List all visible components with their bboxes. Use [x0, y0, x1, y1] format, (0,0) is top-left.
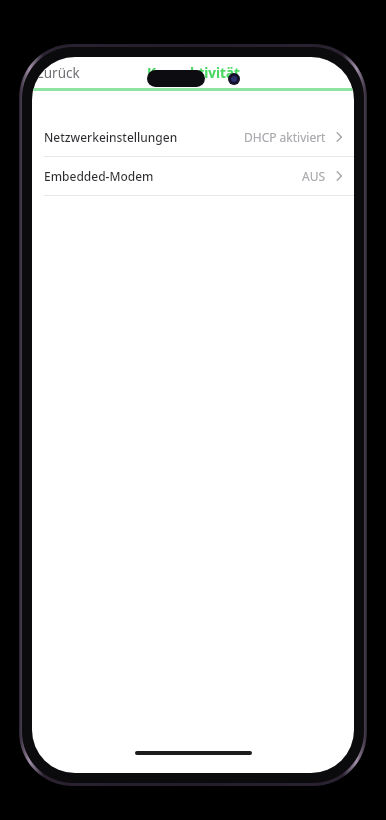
staticText: DHCP aktiviert: [244, 129, 326, 145]
staticText: Netzwerkeinstellungen: [44, 129, 178, 145]
staticText: Embedded-Modem: [44, 168, 154, 184]
staticText: Zurück: [36, 64, 80, 82]
button[interactable]: Embedded-Modem: [32, 157, 354, 195]
staticText: AUS: [302, 168, 326, 184]
button[interactable]: Netzwerkeinstellungen: [32, 118, 354, 156]
staticText: Konnektivität: [147, 64, 240, 82]
other: Öffnen: [334, 129, 344, 145]
button[interactable]: Zurück: [32, 60, 90, 86]
other: Öffnen: [334, 168, 344, 184]
